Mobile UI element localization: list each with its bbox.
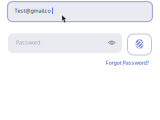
button[interactable]: Sign in with fingerprint [127, 34, 151, 55]
staticText: Password [16, 39, 40, 46]
button[interactable]: Password [8, 33, 122, 53]
staticText: Test@gmail.co [14, 7, 50, 14]
button[interactable]: Forgot Password? [105, 59, 148, 66]
staticText: Forgot Password? [105, 59, 148, 66]
button[interactable]: Test@gmail.co [7, 2, 152, 22]
